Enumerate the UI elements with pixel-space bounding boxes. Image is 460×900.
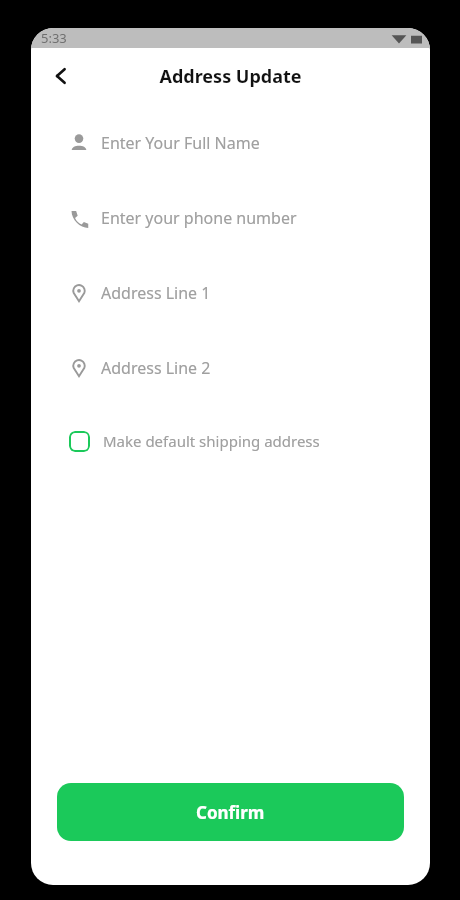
staticText: Address Update xyxy=(159,64,302,89)
staticText: Make default shipping address xyxy=(103,431,320,451)
staticText: 5:33 xyxy=(41,29,67,47)
button[interactable]: Make default shipping address xyxy=(31,427,430,455)
button[interactable]: Confirm xyxy=(57,783,404,841)
button[interactable]: Enter your phone number xyxy=(31,206,430,230)
button[interactable]: Back xyxy=(41,56,81,96)
button[interactable]: Enter Your Full Name xyxy=(31,131,430,155)
staticText: Address Line 2 xyxy=(101,357,211,379)
staticText: Address Line 1 xyxy=(101,282,211,304)
staticText: Confirm xyxy=(196,801,265,824)
button[interactable]: Address Line 1 xyxy=(31,281,430,305)
button[interactable]: Address Line 2 xyxy=(31,356,430,380)
staticText: Enter your phone number xyxy=(101,207,297,229)
staticText: Enter Your Full Name xyxy=(101,132,260,154)
